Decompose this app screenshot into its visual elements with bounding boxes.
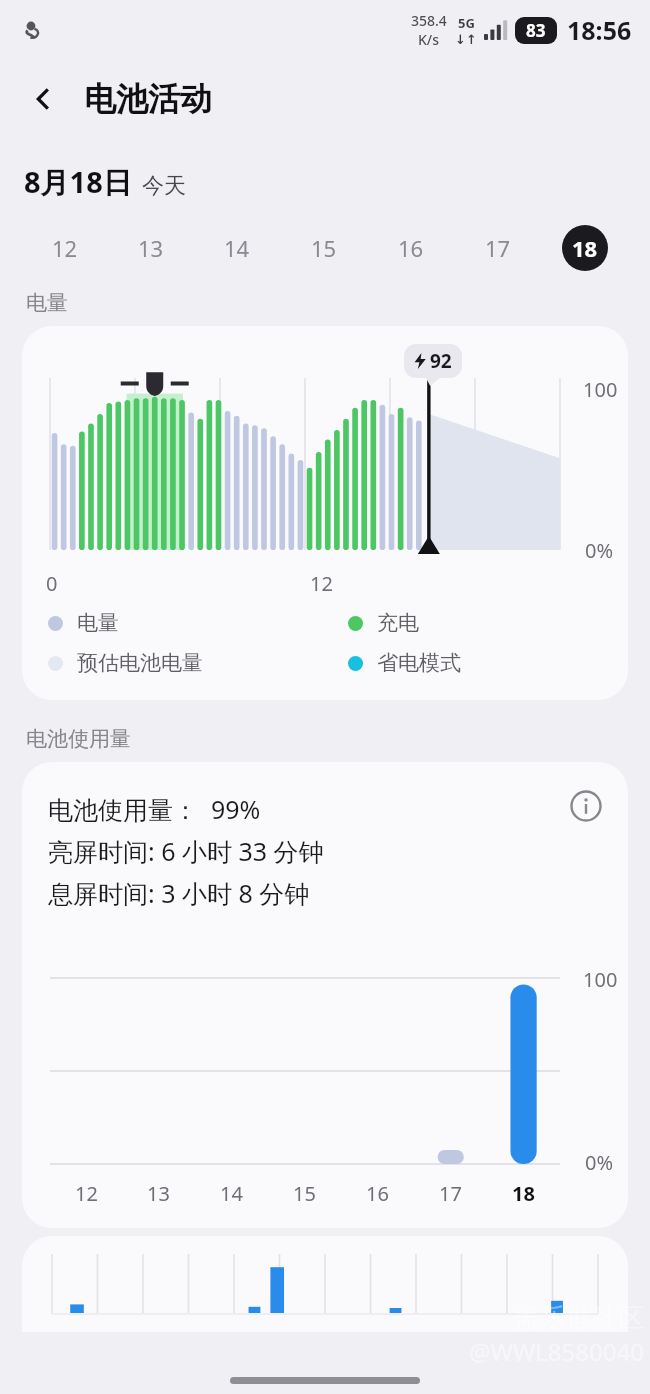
- staticText: 92: [430, 348, 452, 374]
- staticText: 5G: [458, 14, 475, 32]
- staticText: 358.4: [411, 11, 447, 30]
- staticText: 盖乐世社区: [514, 1302, 644, 1335]
- staticText: 14: [220, 1180, 243, 1207]
- staticText: 电池活动: [84, 79, 212, 119]
- button[interactable]: Info: [564, 784, 608, 828]
- staticText: 电量: [26, 290, 68, 316]
- button[interactable]: 92: [22, 326, 628, 700]
- staticText: 充电: [377, 610, 419, 636]
- staticText: 16: [398, 233, 424, 263]
- staticText: 今天: [142, 172, 186, 200]
- staticText: 0%: [585, 1149, 614, 1176]
- staticText: 0: [46, 570, 58, 597]
- button[interactable]: Back: [20, 75, 68, 123]
- staticText: 15: [311, 233, 337, 263]
- staticText: 16: [366, 1180, 389, 1207]
- staticText: 预估电池电量: [77, 650, 203, 676]
- staticText: 100: [583, 966, 618, 993]
- staticText: 0%: [585, 537, 614, 564]
- staticText: 电池使用量： 99%: [48, 792, 261, 826]
- staticText: 12: [75, 1180, 98, 1207]
- staticText: K/s: [418, 30, 440, 49]
- staticText: 17: [485, 233, 511, 263]
- staticText: 83: [526, 19, 546, 42]
- staticText: 省电模式: [377, 650, 461, 676]
- button[interactable]: 16: [367, 220, 454, 276]
- staticText: 电池使用量: [26, 726, 131, 752]
- button[interactable]: 17: [454, 220, 541, 276]
- button[interactable]: 12: [22, 220, 108, 276]
- staticText: 100: [583, 376, 618, 403]
- staticText: 12: [52, 233, 78, 263]
- staticText: 亮屏时间: 6 小时 33 分钟: [48, 834, 324, 868]
- button[interactable]: 18: [541, 220, 628, 276]
- button[interactable]: [22, 1236, 628, 1332]
- staticText: 18:56: [567, 13, 632, 47]
- button[interactable]: 13: [108, 220, 194, 276]
- staticText: 13: [138, 233, 164, 263]
- staticText: 18: [572, 233, 598, 263]
- staticText: 17: [439, 1180, 462, 1207]
- staticText: 14: [224, 233, 250, 263]
- staticText: 15: [293, 1180, 316, 1207]
- button[interactable]: 15: [280, 220, 367, 276]
- staticText: 13: [147, 1180, 170, 1207]
- staticText: 12: [310, 570, 333, 597]
- staticText: 8月18日: [24, 162, 132, 202]
- button[interactable]: 电池使用量： 99%: [22, 762, 628, 1228]
- staticText: 电量: [77, 610, 119, 636]
- button[interactable]: 14: [194, 220, 280, 276]
- staticText: 18: [512, 1180, 535, 1207]
- staticText: ↓↑: [455, 32, 477, 47]
- staticText: 息屏时间: 3 小时 8 分钟: [48, 876, 310, 910]
